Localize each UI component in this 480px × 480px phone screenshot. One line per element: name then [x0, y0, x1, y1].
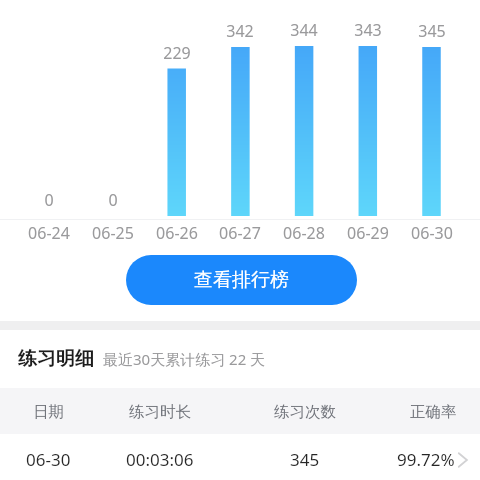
staticText: 06-30	[26, 448, 71, 471]
staticText: 345	[392, 20, 472, 42]
staticText: 06-26	[137, 222, 217, 244]
staticText: 06-25	[73, 222, 153, 244]
staticText: 06-30	[392, 222, 472, 244]
staticText: 最近30天累计练习 22 天	[103, 349, 266, 369]
staticText: 345	[290, 448, 320, 471]
staticText: 查看排行榜	[194, 268, 289, 292]
staticText: 0	[73, 189, 153, 211]
staticText: 06-28	[264, 222, 344, 244]
staticText: 99.72%	[397, 448, 455, 471]
staticText: 练习次数	[274, 402, 336, 422]
staticText: 正确率	[410, 402, 457, 422]
staticText: 229	[137, 42, 217, 64]
staticText: 日期	[33, 402, 64, 422]
staticText: 练习明细	[18, 347, 94, 371]
staticText: 0	[9, 189, 89, 211]
staticText: 06-24	[9, 222, 89, 244]
staticText: 343	[328, 19, 408, 41]
button[interactable]: 查看排行榜	[126, 255, 357, 305]
staticText: 06-27	[200, 222, 280, 244]
staticText: 06-29	[328, 222, 408, 244]
button[interactable]: 06-30	[0, 434, 480, 480]
staticText: 练习时长	[129, 402, 191, 422]
other: Details	[456, 450, 470, 470]
staticText: 342	[200, 20, 280, 42]
staticText: 344	[264, 19, 344, 41]
staticText: 00:03:06	[126, 448, 194, 471]
